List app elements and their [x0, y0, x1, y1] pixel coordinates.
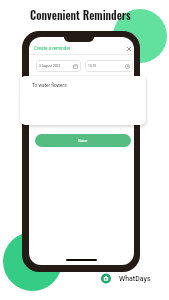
staticText: Convenient Reminders — [30, 7, 131, 23]
staticText: Save — [78, 138, 88, 143]
staticText: 10:10 — [88, 64, 97, 68]
button[interactable]: To water flowers — [20, 76, 146, 125]
staticText: Create a reminder — [34, 46, 71, 51]
button[interactable]: 10:10 — [85, 60, 133, 72]
button[interactable]: Close — [123, 43, 134, 54]
staticText: 3 August 2022 — [39, 64, 61, 68]
button[interactable]: Save — [35, 134, 131, 147]
button[interactable]: 3 August 2022 — [36, 60, 81, 72]
staticText: WhatDays — [119, 275, 151, 283]
button[interactable]: WhatDays — [101, 273, 151, 284]
staticText: To water flowers — [32, 83, 67, 89]
